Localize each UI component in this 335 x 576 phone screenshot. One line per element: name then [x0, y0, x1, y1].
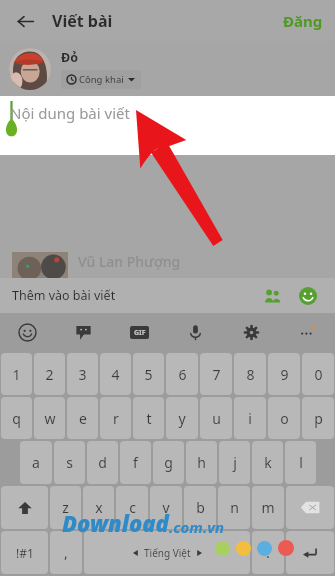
staticText: e [79, 409, 87, 428]
button[interactable]: f [120, 441, 151, 484]
staticText: 2 [45, 365, 54, 384]
button[interactable]: 8 [234, 353, 266, 395]
staticText: Vũ Lan Phượng [78, 252, 181, 271]
staticText: GIF [134, 328, 146, 338]
button[interactable]: d [87, 441, 118, 484]
button[interactable]: More options [279, 313, 335, 351]
button[interactable]: !#1 [1, 531, 48, 574]
button[interactable]: z [50, 486, 81, 529]
button[interactable]: h [186, 441, 217, 484]
button[interactable]: s [54, 441, 85, 484]
staticText: 3 [78, 365, 87, 384]
button[interactable]: r [100, 397, 131, 439]
staticText: x [95, 498, 103, 517]
button[interactable]: o [268, 397, 300, 439]
staticText: 9 [280, 365, 289, 384]
staticText: p [314, 409, 323, 428]
button[interactable]: b [184, 486, 216, 529]
button[interactable]: Voice input [167, 313, 223, 351]
staticText: s [66, 453, 73, 472]
button[interactable]: w [34, 397, 65, 439]
button[interactable]: n [218, 486, 250, 529]
button[interactable]: y [166, 397, 198, 439]
button[interactable]: . [252, 531, 284, 574]
staticText: Công khai [79, 73, 124, 86]
staticText: . [266, 543, 270, 562]
staticText: a [32, 453, 40, 472]
button[interactable]: Emoji [0, 313, 55, 351]
button[interactable]: t [133, 397, 164, 439]
button[interactable]: x [83, 486, 114, 529]
staticText: l [299, 453, 303, 472]
staticText: q [12, 409, 21, 428]
staticText: Viết bài [52, 10, 113, 32]
button[interactable]: Công khai [61, 70, 141, 89]
staticText: o [280, 409, 289, 428]
button[interactable]: p [302, 397, 334, 439]
button[interactable]: Settings [223, 313, 279, 351]
staticText: r [113, 409, 119, 428]
staticText: v [162, 498, 170, 517]
button[interactable]: 4 [100, 353, 131, 395]
staticText: 7 [212, 365, 221, 384]
button[interactable]: , [50, 531, 82, 574]
button[interactable]: 7 [200, 353, 232, 395]
button[interactable]: l [285, 441, 316, 484]
button[interactable]: Tag people [257, 281, 287, 311]
staticText: Nội dung bài viết [10, 103, 130, 123]
button[interactable]: j [219, 441, 250, 484]
button[interactable]: Backspace [286, 486, 334, 529]
button[interactable]: Space, Tiếng Việt [84, 531, 250, 574]
button[interactable]: 3 [67, 353, 98, 395]
staticText: Tiếng Việt [144, 546, 191, 560]
button[interactable]: Enter [286, 531, 334, 574]
button[interactable]: a [20, 441, 52, 484]
staticText: z [62, 498, 69, 517]
button[interactable]: 0 [302, 353, 334, 395]
staticText: Thêm vào bài viết [12, 287, 257, 304]
button[interactable]: Đăng [271, 3, 335, 39]
staticText: .com.vn [169, 517, 224, 537]
button[interactable]: k [252, 441, 283, 484]
button[interactable]: Shift [1, 486, 48, 529]
staticText: i [248, 409, 252, 428]
staticText: Đăng [283, 11, 323, 31]
staticText: Download [62, 508, 169, 538]
button[interactable]: c [116, 486, 148, 529]
staticText: k [264, 453, 272, 472]
button[interactable]: 6 [166, 353, 198, 395]
staticText: j [233, 453, 237, 472]
staticText: !#1 [16, 545, 34, 561]
staticText: 8 [246, 365, 255, 384]
staticText: c [129, 498, 136, 517]
staticText: w [44, 409, 56, 428]
button[interactable]: GIF [111, 313, 167, 351]
button[interactable]: 5 [133, 353, 164, 395]
button[interactable]: 9 [268, 353, 300, 395]
button[interactable]: Vũ Lan Phượng [12, 252, 323, 278]
button[interactable]: Nội dung bài viết [0, 96, 335, 155]
button[interactable]: Profile photo [9, 48, 51, 90]
staticText: u [212, 409, 221, 428]
button[interactable]: m [252, 486, 284, 529]
staticText: 5 [144, 365, 153, 384]
staticText: n [230, 498, 239, 517]
button[interactable]: i [234, 397, 266, 439]
button[interactable]: 2 [34, 353, 65, 395]
button[interactable]: e [67, 397, 98, 439]
button[interactable]: u [200, 397, 232, 439]
button[interactable]: Back [8, 4, 42, 38]
staticText: d [98, 453, 107, 472]
staticText: t [146, 409, 152, 428]
staticText: f [133, 453, 138, 472]
button[interactable]: q [1, 397, 32, 439]
staticText: b [196, 498, 205, 517]
button[interactable]: 1 [1, 353, 32, 395]
button[interactable]: Feeling or activity [293, 281, 323, 311]
staticText: 6 [178, 365, 187, 384]
staticText: g [164, 453, 173, 472]
button[interactable]: v [150, 486, 182, 529]
button[interactable]: g [153, 441, 184, 484]
staticText: 4 [111, 365, 120, 384]
button[interactable]: Stickers [55, 313, 111, 351]
